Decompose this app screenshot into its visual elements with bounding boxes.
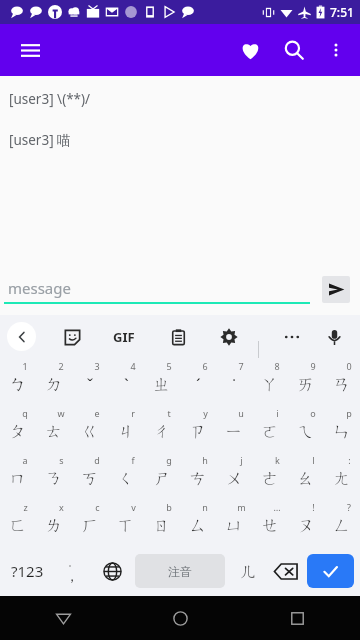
button[interactable]: z [0, 499, 36, 546]
staticText: ㄞ [297, 374, 315, 395]
button[interactable]: s [36, 452, 72, 499]
staticText: ㄓ [153, 374, 171, 395]
button[interactable]: a [0, 452, 36, 499]
button[interactable]: u [216, 405, 252, 452]
button[interactable]: Open navigation menu [8, 28, 52, 72]
staticText: u [238, 407, 244, 419]
staticText: x [59, 501, 64, 513]
button[interactable]: w [36, 405, 72, 452]
button[interactable]: Back [7, 322, 36, 351]
button[interactable]: d [72, 452, 108, 499]
staticText: h [202, 454, 208, 466]
staticText: ㄙ [189, 515, 207, 536]
staticText: ㄉ [45, 374, 63, 395]
button[interactable]: i [252, 405, 288, 452]
button[interactable]: g [144, 452, 180, 499]
button[interactable]: Comma [54, 548, 90, 594]
button[interactable]: Search [272, 28, 316, 72]
staticText: c [95, 501, 100, 513]
button[interactable]: k [252, 452, 288, 499]
staticText: 9 [310, 360, 316, 372]
button[interactable]: Change language [94, 548, 130, 594]
staticText: v [131, 501, 136, 513]
button[interactable]: Recent apps [274, 596, 320, 640]
button[interactable]: Enter [307, 554, 354, 588]
staticText: e [94, 407, 100, 419]
staticText: ? [347, 501, 351, 513]
button[interactable]: message [4, 278, 310, 304]
button[interactable]: 3 [72, 358, 108, 405]
staticText: m [237, 501, 246, 513]
button[interactable]: 5 [144, 358, 180, 405]
staticText: ˇ [86, 373, 94, 396]
button[interactable]: 4 [108, 358, 144, 405]
button[interactable]: Settings [211, 319, 247, 355]
staticText: ㄐ [117, 421, 135, 442]
button[interactable]: : [324, 452, 360, 499]
button[interactable]: q [0, 405, 36, 452]
button[interactable]: ?123 [4, 548, 50, 594]
staticText: 。 [68, 557, 77, 568]
staticText: n [202, 501, 208, 513]
staticText: ㄟ [297, 421, 315, 442]
staticText: ! [312, 501, 315, 513]
button[interactable]: t [144, 405, 180, 452]
button[interactable]: Clipboard [160, 319, 196, 355]
button[interactable]: Stickers [54, 319, 90, 355]
button[interactable]: 0 [324, 358, 360, 405]
button[interactable]: p [324, 405, 360, 452]
button[interactable]: j [216, 452, 252, 499]
staticText: [user3] \(**)/ [9, 90, 91, 108]
button[interactable]: 7 [216, 358, 252, 405]
button[interactable]: o [288, 405, 324, 452]
button[interactable]: 6 [180, 358, 216, 405]
button[interactable]: ! [288, 499, 324, 546]
button[interactable]: n [180, 499, 216, 546]
button[interactable]: 注音 [135, 554, 225, 588]
staticText: ㄜ [261, 468, 279, 489]
staticText: ㄈ [9, 515, 27, 536]
button[interactable]: Voice input [316, 319, 352, 355]
button[interactable]: 2 [36, 358, 72, 405]
staticText: ㄔ [153, 421, 171, 442]
button[interactable]: c [72, 499, 108, 546]
staticText: ㄠ [297, 468, 315, 489]
staticText: GIF [113, 328, 135, 346]
button[interactable]: GIF [104, 317, 144, 357]
button[interactable]: Home [157, 596, 203, 640]
staticText: ㄗ [189, 421, 207, 442]
staticText: ㄡ [297, 515, 315, 536]
button[interactable]: ? [324, 499, 360, 546]
button[interactable]: ㄦ [232, 548, 266, 594]
staticText: ㄣ [333, 421, 351, 442]
button[interactable]: 1 [0, 358, 36, 405]
staticText: p [346, 407, 352, 419]
button[interactable]: r [108, 405, 144, 452]
staticText: ， [65, 568, 79, 586]
button[interactable]: h [180, 452, 216, 499]
button[interactable]: 8 [252, 358, 288, 405]
button[interactable]: Back [40, 596, 86, 640]
button[interactable]: e [72, 405, 108, 452]
button[interactable]: y [180, 405, 216, 452]
button[interactable]: b [144, 499, 180, 546]
staticText: l [312, 454, 315, 466]
button[interactable]: … [252, 499, 288, 546]
staticText: r [131, 407, 135, 419]
staticText: 1 [22, 360, 28, 372]
staticText: s [59, 454, 64, 466]
button[interactable]: Send [322, 276, 350, 303]
button[interactable]: Backspace [268, 548, 304, 594]
button[interactable]: 9 [288, 358, 324, 405]
button[interactable]: Favorites [228, 28, 272, 72]
button[interactable]: l [288, 452, 324, 499]
button[interactable]: v [108, 499, 144, 546]
staticText: 注音 [168, 564, 192, 579]
staticText: ㄅ [9, 374, 27, 395]
button[interactable]: More options [316, 30, 356, 70]
button[interactable]: m [216, 499, 252, 546]
button[interactable]: f [108, 452, 144, 499]
button[interactable]: More [274, 319, 310, 355]
staticText: 7 [238, 360, 244, 372]
button[interactable]: x [36, 499, 72, 546]
